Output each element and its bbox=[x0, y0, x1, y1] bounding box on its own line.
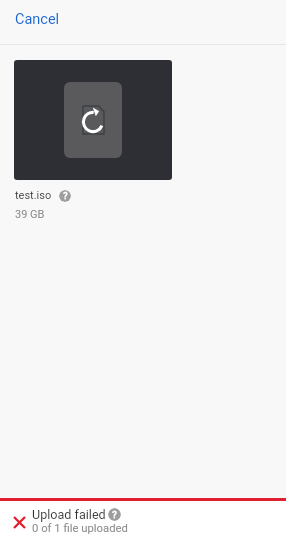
button[interactable]: Help about test.iso bbox=[59, 190, 71, 202]
button[interactable]: Cancel bbox=[7, 5, 68, 34]
staticText: ? bbox=[63, 191, 68, 202]
staticText: ? bbox=[112, 509, 117, 520]
staticText: Cancel bbox=[15, 11, 60, 28]
staticText: Upload failed bbox=[32, 507, 106, 522]
button[interactable]: test.iso preview, retry bbox=[14, 60, 172, 180]
staticText: 0 of 1 file uploaded bbox=[32, 522, 128, 535]
staticText: 39 GB bbox=[15, 208, 45, 221]
button[interactable]: Help about the upload failure bbox=[108, 508, 121, 521]
other: Upload failed bbox=[14, 517, 25, 528]
button[interactable]: Upload failed bbox=[0, 501, 286, 543]
staticText: test.iso bbox=[15, 189, 52, 202]
